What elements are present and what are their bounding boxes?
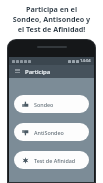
button[interactable]: Open navigation menu [13, 67, 22, 76]
button[interactable]: Sondeo [14, 95, 89, 113]
button[interactable]: AntiSondeo [14, 123, 89, 141]
staticText: Participa [25, 68, 51, 76]
staticText: 14:04 [80, 58, 91, 64]
staticText: Participa en el Sondeo, Antisondeo y el … [12, 4, 91, 34]
staticText: AntiSondeo [34, 129, 64, 136]
staticText: Sondeo [34, 101, 54, 108]
staticText: Test de Afinidad [34, 157, 76, 164]
button[interactable]: Test de Afinidad [14, 151, 89, 169]
